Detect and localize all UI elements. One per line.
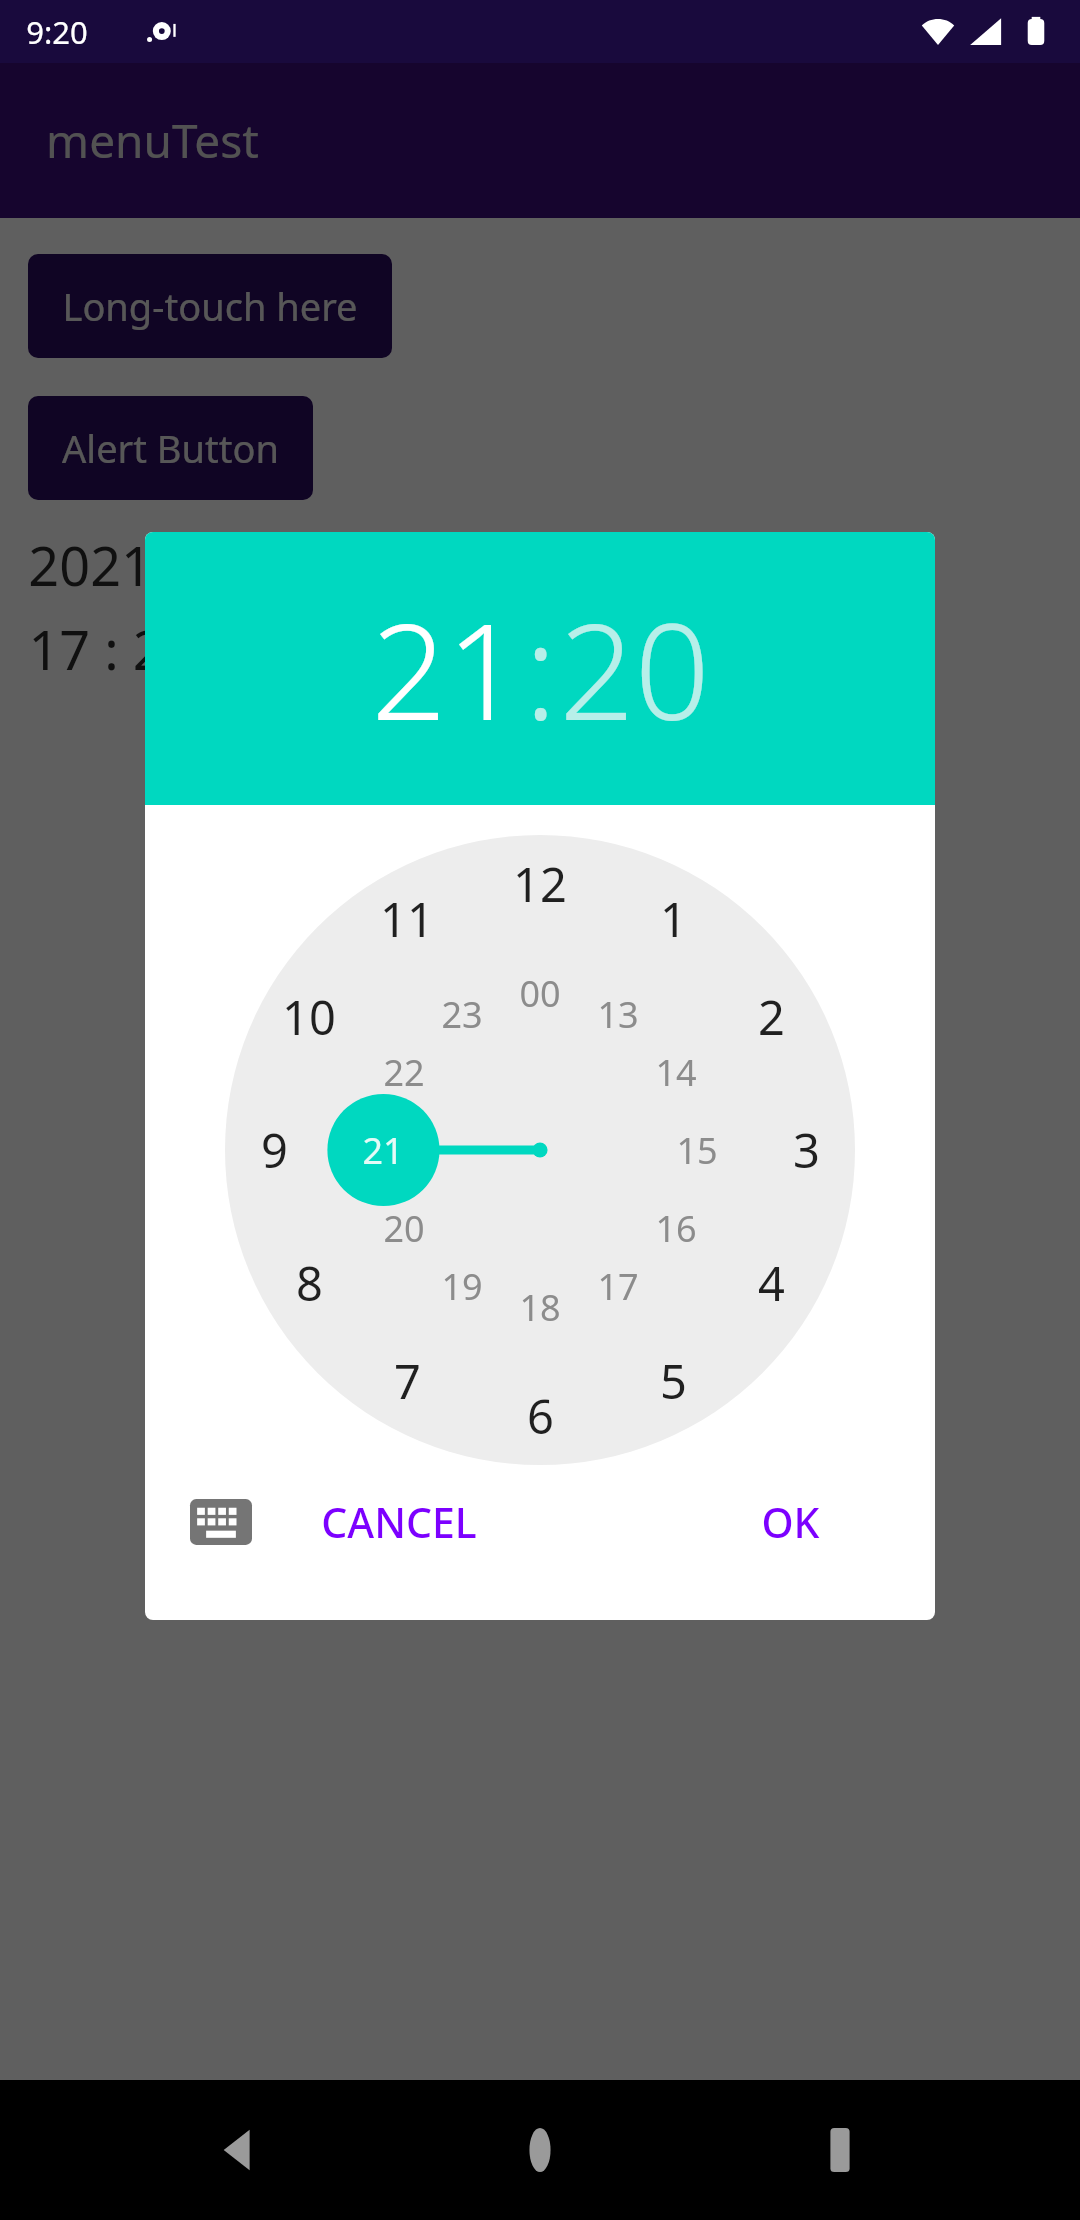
staticText: 7 (394, 1349, 421, 1413)
button[interactable]: 20 (559, 579, 710, 759)
button[interactable]: 21 (371, 579, 522, 759)
staticText: 18 (519, 1283, 561, 1332)
staticText: menuTest (46, 109, 259, 172)
button[interactable]: CANCEL (295, 1472, 503, 1572)
staticText: 20 (383, 1204, 425, 1253)
staticText: 2 (758, 985, 785, 1049)
staticText: 2021 - 3 - 8 (28, 528, 305, 602)
staticText: 10 (282, 985, 336, 1049)
staticText: 15 (676, 1126, 718, 1175)
staticText: 14 (655, 1048, 697, 1097)
staticText: 3 (793, 1118, 820, 1182)
button[interactable]: Home (480, 2090, 600, 2210)
staticText: 11 (380, 887, 434, 951)
staticText: OK (761, 1494, 820, 1550)
staticText: : (524, 579, 557, 759)
button[interactable]: Long-touch here (28, 254, 392, 358)
staticText: 00 (519, 969, 561, 1018)
staticText: 9:20 (26, 11, 88, 53)
button[interactable]: Recent apps (780, 2090, 900, 2210)
staticText: 13 (597, 990, 639, 1039)
staticText: 17 (597, 1262, 639, 1311)
staticText: 23 (441, 990, 483, 1039)
staticText: 21 (371, 579, 522, 759)
staticText: 19 (441, 1262, 483, 1311)
staticText: 20 (559, 579, 710, 759)
staticText: 16 (655, 1204, 697, 1253)
button[interactable]: Switch to keyboard input (171, 1472, 271, 1572)
button[interactable]: OK (735, 1472, 846, 1572)
button[interactable]: Alert Button (28, 396, 313, 500)
staticText: CANCEL (321, 1494, 477, 1550)
staticText: Alert Button (62, 422, 279, 474)
staticText: 17 : 20 (28, 612, 195, 686)
staticText: Long-touch here (62, 280, 358, 332)
staticText: 6 (527, 1384, 554, 1448)
staticText: 5 (660, 1349, 687, 1413)
staticText: 9 (261, 1118, 288, 1182)
staticText: 12 (513, 852, 567, 916)
button[interactable]: Back (180, 2090, 300, 2210)
staticText: 1 (660, 887, 687, 951)
staticText: 21 (362, 1126, 404, 1175)
staticText: 8 (296, 1251, 323, 1315)
staticText: 22 (383, 1048, 425, 1097)
button[interactable] (225, 835, 855, 1465)
staticText: 4 (758, 1251, 785, 1315)
